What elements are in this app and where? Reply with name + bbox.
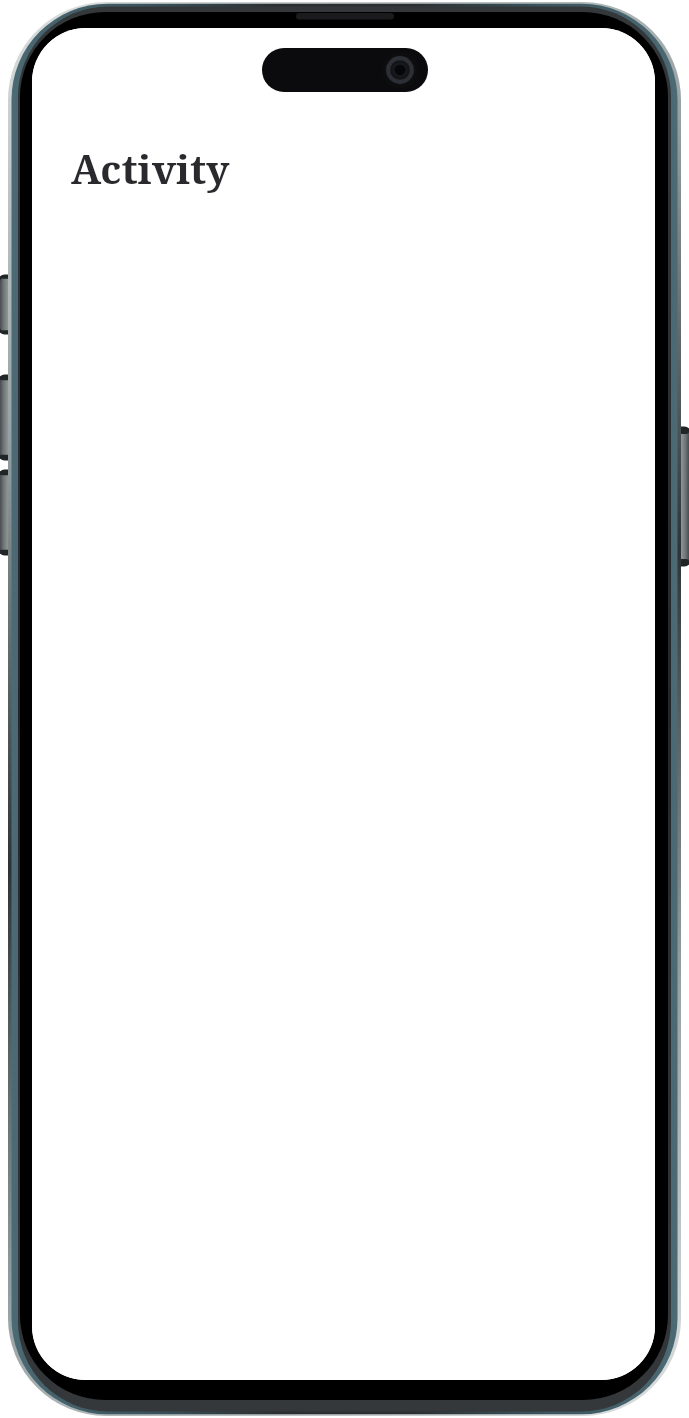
staticText: Activity xyxy=(71,141,230,195)
button[interactable]: Activity xyxy=(71,141,655,195)
